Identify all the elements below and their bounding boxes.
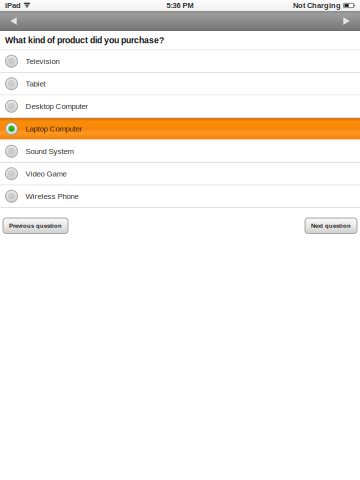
staticText: Wireless Phone [25, 192, 78, 200]
staticText: Sound System [25, 147, 73, 155]
staticText: Next question [311, 222, 351, 229]
staticText: What kind of product did you purchase? [5, 35, 164, 45]
button[interactable]: Television [0, 50, 360, 72]
staticText: Laptop Computer [25, 124, 82, 133]
staticText: Not Charging [293, 1, 341, 10]
button[interactable]: Video Game [0, 163, 360, 184]
staticText: Previous question [9, 222, 62, 229]
button[interactable]: Tablet [0, 73, 360, 94]
staticText: Television [25, 57, 59, 65]
staticText: Tablet [25, 79, 45, 88]
button[interactable]: Next question [305, 218, 357, 233]
button[interactable]: Forward [333, 11, 360, 31]
button[interactable]: Back [0, 11, 27, 31]
button[interactable]: Previous question [3, 218, 68, 233]
staticText: Desktop Computer [25, 102, 88, 110]
button[interactable]: Laptop Computer [0, 118, 360, 139]
staticText: 5:36 PM [166, 1, 193, 10]
staticText: Video Game [25, 169, 66, 178]
button[interactable]: Wireless Phone [0, 185, 360, 207]
button[interactable]: Desktop Computer [0, 95, 360, 117]
button[interactable]: Sound System [0, 140, 360, 162]
staticText: iPad [5, 1, 21, 10]
